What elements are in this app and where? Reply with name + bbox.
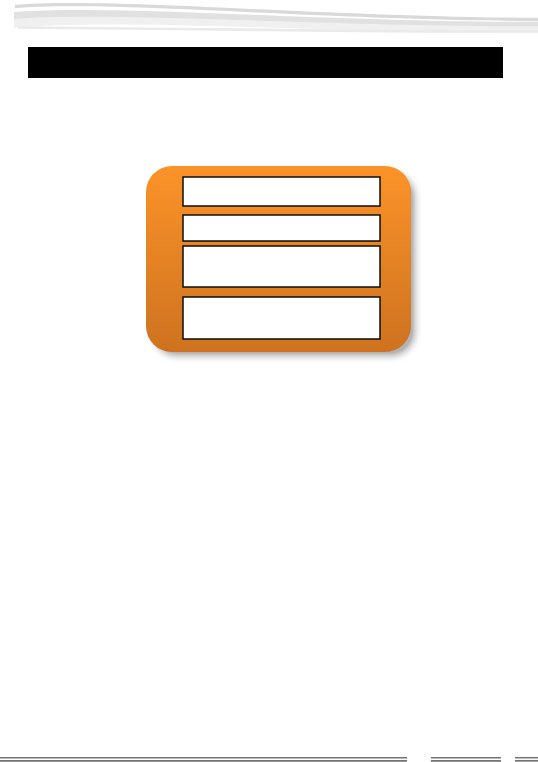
button[interactable]: Field one [183, 177, 380, 206]
button[interactable]: Field three [183, 246, 380, 287]
button[interactable]: Field four [183, 297, 380, 339]
button[interactable]: Field two [183, 215, 380, 241]
button[interactable]: Form card [146, 166, 411, 352]
